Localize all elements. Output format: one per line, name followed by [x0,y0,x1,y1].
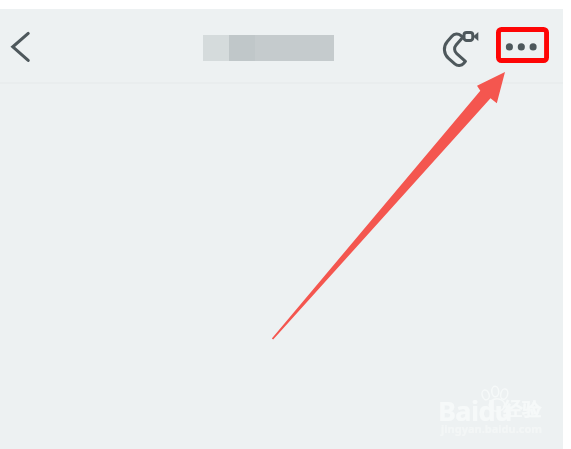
staticText: 经验 [503,398,541,422]
button[interactable]: Video call [438,25,484,71]
button[interactable]: More options [493,24,553,67]
staticText: Baidu [438,392,512,429]
button[interactable]: Back [0,10,44,54]
